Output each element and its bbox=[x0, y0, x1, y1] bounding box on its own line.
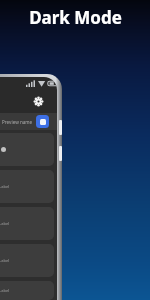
button[interactable]: Toggle dark mode bbox=[36, 115, 49, 128]
button[interactable]: Settings bbox=[31, 94, 46, 109]
staticText: Dark Mode bbox=[29, 6, 122, 29]
staticText: Label bbox=[0, 258, 10, 263]
button[interactable]: Label bbox=[0, 207, 54, 240]
staticText: Preview name bbox=[2, 119, 33, 125]
button[interactable]: Preview name bbox=[2, 119, 33, 125]
staticText: Label bbox=[0, 184, 10, 189]
button[interactable]: Label bbox=[0, 244, 54, 277]
button[interactable] bbox=[0, 133, 54, 166]
button[interactable]: Label bbox=[0, 281, 54, 300]
staticText: Label bbox=[0, 288, 10, 293]
staticText: Label bbox=[0, 221, 10, 226]
button[interactable]: Label bbox=[0, 170, 54, 203]
